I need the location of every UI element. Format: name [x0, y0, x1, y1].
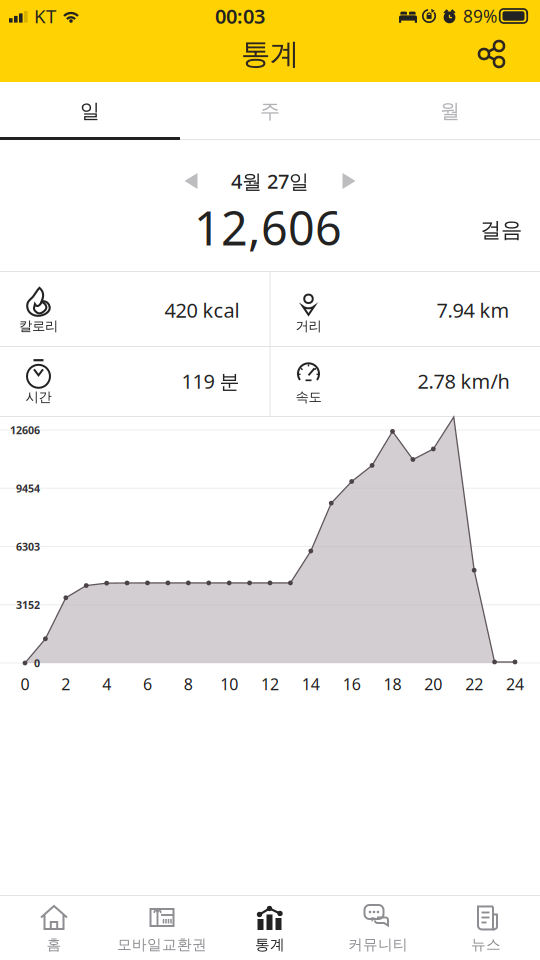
staticText: 0 — [20, 673, 29, 695]
button[interactable]: Previous day — [171, 161, 211, 201]
button[interactable]: 홈 — [0, 896, 108, 960]
button[interactable]: 칼로리 — [0, 275, 269, 345]
staticText: 2.78 km/h — [417, 368, 509, 394]
staticText: 12,606 — [194, 196, 342, 258]
button[interactable]: 시간 — [0, 346, 269, 416]
staticText: 거리 — [295, 318, 321, 334]
staticText: 모바일교환권 — [117, 935, 207, 953]
staticText: 119 분 — [181, 368, 239, 394]
staticText: 18 — [383, 673, 401, 695]
button[interactable]: Share — [468, 32, 516, 76]
button[interactable]: 주 — [180, 82, 360, 140]
staticText: 16 — [343, 673, 361, 695]
staticText: 6303 — [16, 539, 40, 554]
staticText: 89% — [463, 4, 497, 27]
staticText: 20 — [424, 673, 442, 695]
button[interactable]: 거리 — [270, 275, 539, 345]
staticText: 0 — [34, 656, 40, 670]
staticText: 00:03 — [215, 3, 265, 29]
staticText: 4 — [102, 673, 111, 695]
staticText: 4월 27일 — [231, 168, 309, 194]
staticText: 시간 — [25, 389, 51, 405]
staticText: KT — [34, 4, 56, 28]
staticText: 12606 — [10, 423, 40, 437]
staticText: 칼로리 — [19, 318, 58, 334]
staticText: 12 — [261, 673, 279, 695]
staticText: 월 — [440, 99, 460, 123]
staticText: 속도 — [295, 389, 321, 405]
staticText: 24 — [506, 673, 524, 695]
button[interactable]: Next day — [329, 161, 369, 201]
staticText: 10 — [220, 673, 238, 695]
button[interactable]: 일 — [0, 82, 180, 140]
staticText: 걸음 — [480, 217, 522, 243]
staticText: 8 — [184, 673, 193, 695]
staticText: 22 — [465, 673, 483, 695]
staticText: 7.94 km — [436, 297, 509, 323]
staticText: 9454 — [16, 481, 40, 495]
staticText: 2 — [61, 673, 70, 695]
staticText: 홈 — [46, 935, 61, 953]
staticText: 420 kcal — [164, 297, 239, 323]
staticText: 뉴스 — [471, 935, 501, 953]
button[interactable]: 통계 — [216, 896, 324, 960]
button[interactable]: 모바일교환권 — [108, 896, 216, 960]
staticText: 주 — [260, 99, 280, 123]
button[interactable]: 뉴스 — [432, 896, 540, 960]
staticText: 14 — [302, 673, 320, 695]
staticText: 3152 — [16, 598, 40, 612]
button[interactable]: 속도 — [270, 346, 539, 416]
staticText: 6 — [143, 673, 152, 695]
staticText: 일 — [80, 99, 100, 123]
staticText: 통계 — [241, 36, 299, 72]
staticText: 통계 — [255, 935, 285, 953]
button[interactable]: 월 — [360, 82, 540, 140]
button[interactable]: 커뮤니티 — [324, 896, 432, 960]
staticText: 커뮤니티 — [348, 935, 408, 953]
